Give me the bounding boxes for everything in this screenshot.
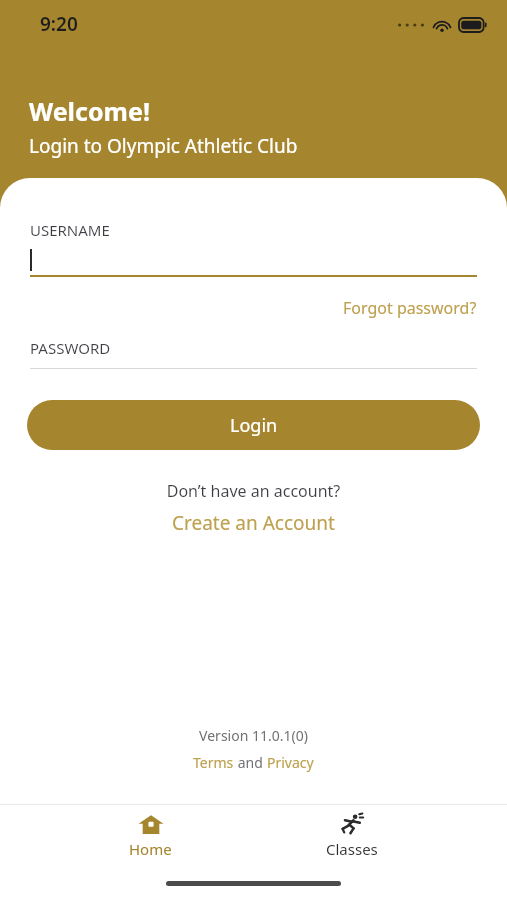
button[interactable]: Terms <box>193 753 234 772</box>
staticText: 9:20 <box>40 11 78 37</box>
staticText: Home <box>129 839 172 859</box>
staticText: USERNAME <box>30 220 110 240</box>
staticText: Login <box>230 413 278 438</box>
staticText: and <box>234 753 267 772</box>
other: Classes <box>339 813 365 835</box>
staticText: PASSWORD <box>30 338 111 358</box>
button[interactable]: Privacy <box>267 753 314 772</box>
staticText: Forgot password? <box>343 297 477 319</box>
button[interactable]: Create an Account <box>164 508 343 538</box>
button[interactable]: PASSWORD <box>0 338 507 369</box>
button[interactable]: Login <box>27 400 480 450</box>
button[interactable]: Home <box>105 809 196 863</box>
staticText: Login to Olympic Athletic Club <box>29 133 298 159</box>
staticText: Version 11.0.1(0) <box>0 726 507 745</box>
button[interactable]: Forgot password? <box>343 293 477 323</box>
staticText: Classes <box>326 839 378 859</box>
staticText: Welcome! <box>29 94 150 128</box>
staticText: Terms <box>193 753 234 772</box>
other: Home <box>138 813 164 835</box>
button[interactable]: USERNAME <box>0 220 507 277</box>
button[interactable]: Classes <box>302 809 402 863</box>
staticText: Create an Account <box>172 510 335 536</box>
staticText: Privacy <box>267 753 314 772</box>
staticText: Don’t have an account? <box>0 480 507 502</box>
